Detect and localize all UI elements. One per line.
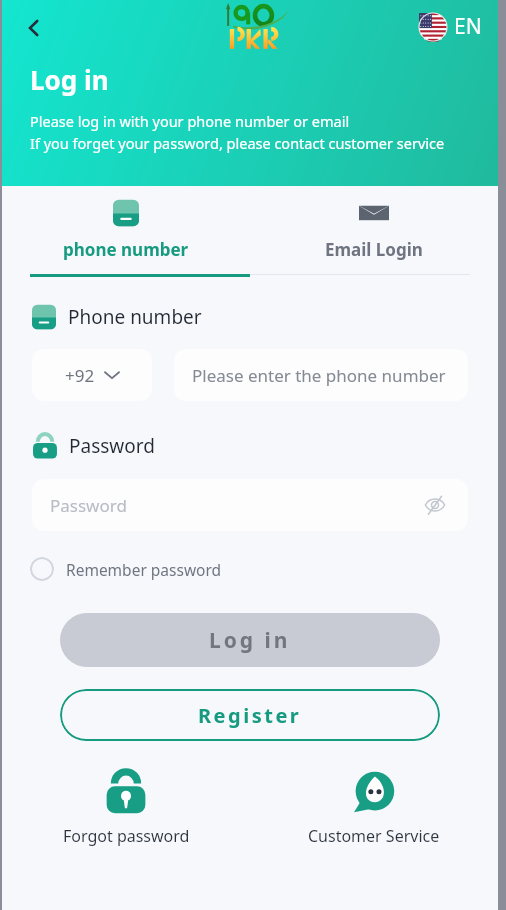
- button[interactable]: Remember password: [26, 553, 232, 585]
- staticText: Password: [50, 494, 127, 517]
- button[interactable]: EN: [415, 8, 486, 45]
- staticText: +92: [65, 364, 95, 387]
- staticText: Password: [69, 433, 155, 459]
- staticText: Forgot password: [63, 825, 190, 847]
- button[interactable]: Log in: [60, 613, 440, 667]
- staticText: Phone number: [68, 304, 202, 330]
- button[interactable]: Back: [14, 8, 54, 48]
- staticText: Email Login: [325, 238, 423, 261]
- staticText: If you forget your password, please cont…: [30, 133, 445, 153]
- staticText: Log in: [209, 626, 291, 655]
- staticText: EN: [454, 12, 482, 41]
- staticText: Please enter the phone number: [192, 364, 446, 387]
- button[interactable]: Forgot password: [2, 769, 250, 847]
- button[interactable]: Please enter the phone number: [174, 349, 468, 401]
- button[interactable]: Show password: [420, 490, 450, 520]
- button[interactable]: phone number: [2, 190, 250, 274]
- button[interactable]: Register: [60, 689, 440, 741]
- staticText: Log in: [30, 62, 109, 97]
- button[interactable]: +92: [32, 349, 152, 401]
- staticText: Register: [198, 702, 302, 729]
- button[interactable]: Email Login: [250, 190, 498, 274]
- staticText: Remember password: [66, 559, 222, 580]
- staticText: Customer Service: [308, 825, 440, 847]
- staticText: Please log in with your phone number or …: [30, 111, 350, 131]
- button[interactable]: Customer Service: [250, 769, 498, 847]
- staticText: phone number: [63, 238, 189, 261]
- button[interactable]: Password: [32, 479, 468, 531]
